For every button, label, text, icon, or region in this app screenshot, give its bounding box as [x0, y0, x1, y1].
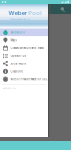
staticText: Vote or Provide Water on Display [10, 77, 48, 81]
staticText: Weber [8, 8, 27, 17]
staticText: Operator List [10, 54, 26, 58]
staticText: Clean Water For All [10, 17, 30, 20]
staticText: Maps [10, 38, 16, 42]
staticText: Social Media [10, 62, 25, 65]
button[interactable]: Vote or Provide Water on Display [0, 75, 48, 83]
button[interactable]: Operator List [0, 52, 48, 60]
button[interactable]: Classes Schedule and Tracks [0, 44, 48, 52]
button[interactable]: Crack Info [0, 67, 48, 75]
staticText: Pool [28, 8, 42, 17]
staticText: Validations [10, 31, 24, 34]
staticText: Version 1.0.4 [3, 86, 16, 90]
staticText: Classes Schedule and Tracks [10, 46, 43, 50]
staticText: Crack Info [10, 70, 23, 73]
button[interactable]: Maps [0, 36, 48, 44]
button[interactable]: Search [58, 4, 68, 14]
button[interactable]: Social Media [0, 60, 48, 67]
button[interactable]: Validations [0, 28, 48, 36]
